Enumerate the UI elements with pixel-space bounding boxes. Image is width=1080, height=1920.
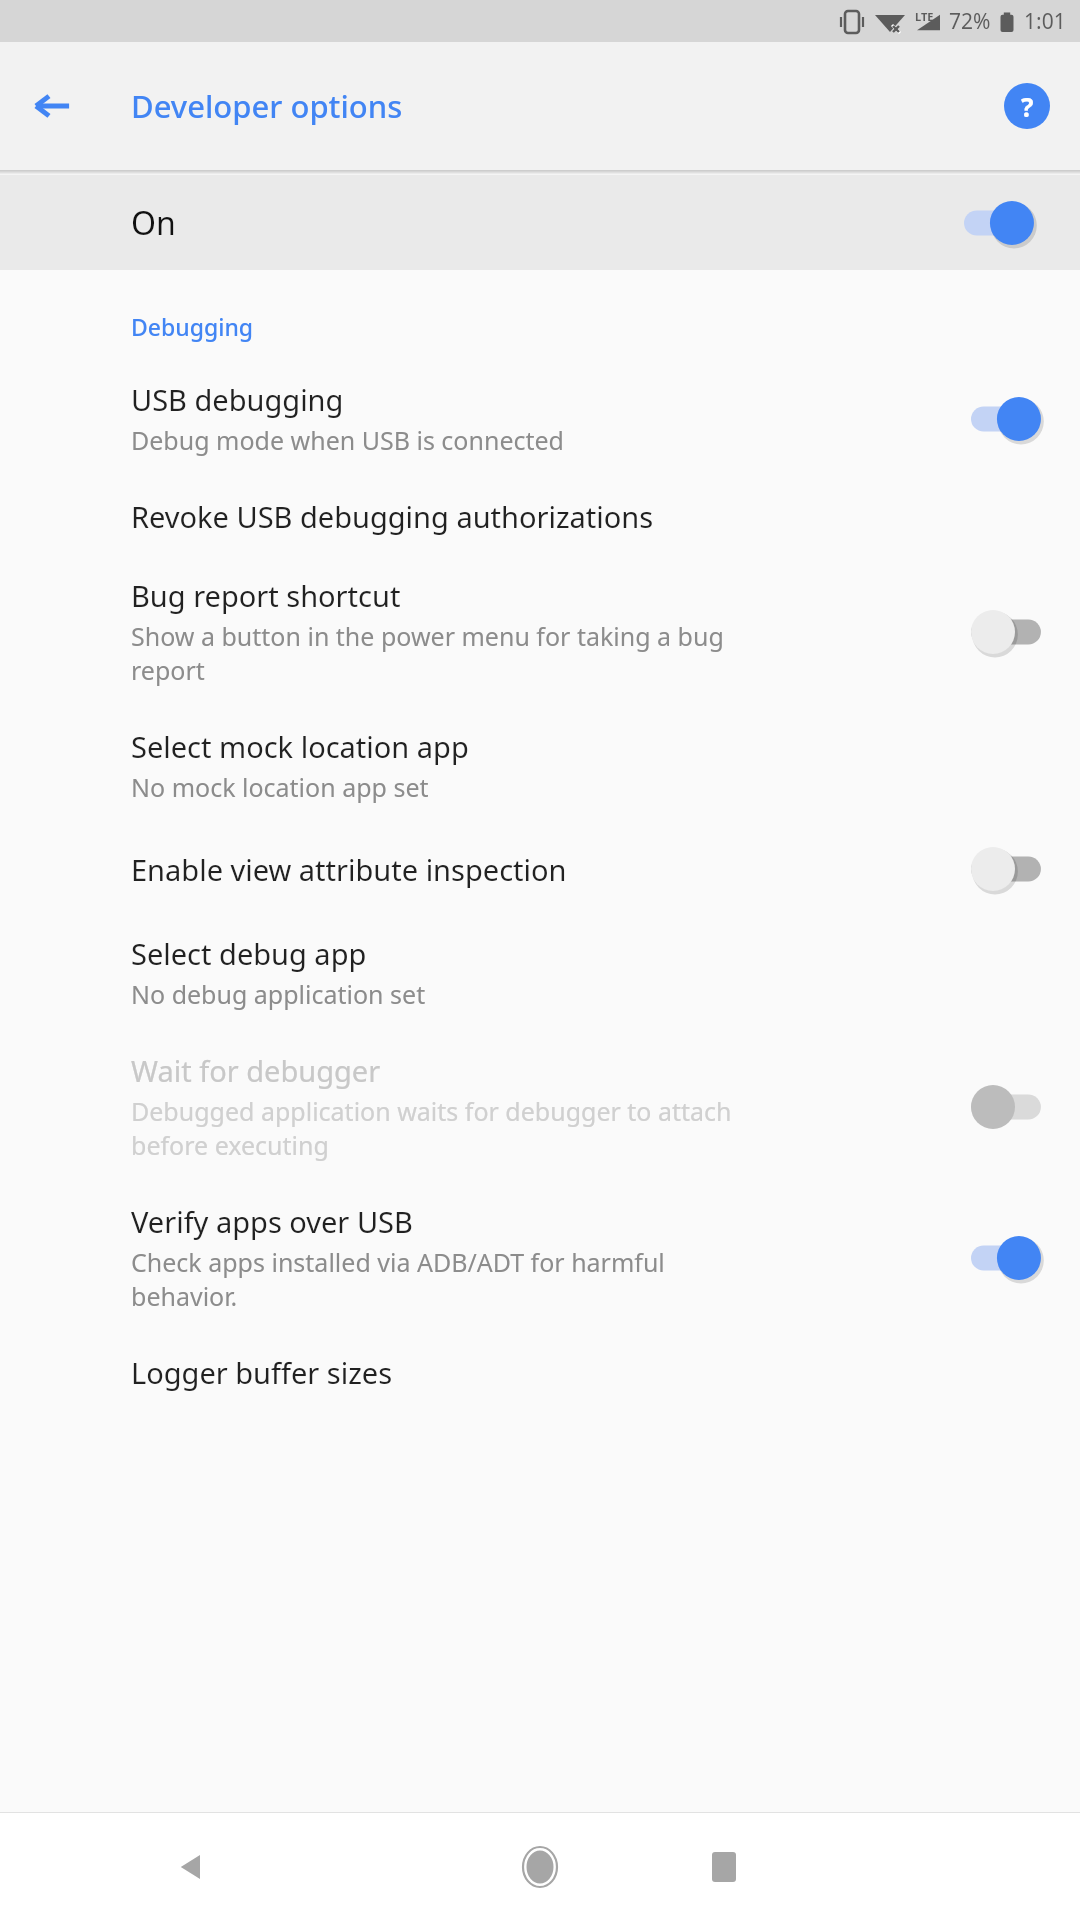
button[interactable]: Logger buffer sizes [0,1333,1080,1412]
staticText: Wait for debugger [131,1051,381,1090]
button[interactable]: Back [20,74,84,138]
staticText: Debug mode when USB is connected [131,423,564,457]
button[interactable]: Home [504,1831,576,1903]
staticText: Check apps installed via ADB/ADT for har… [131,1245,665,1313]
button[interactable]: Select mock location app [0,707,1080,824]
button[interactable]: On [0,175,1080,270]
staticText: Show a button in the power menu for taki… [131,619,724,687]
staticText: Revoke USB debugging authorizations [131,497,654,536]
staticText: No debug application set [131,977,426,1011]
staticText: No mock location app set [131,770,429,804]
staticText: On [131,201,176,245]
staticText: LTE [915,9,934,24]
button[interactable]: Bug report shortcut [0,556,1080,707]
staticText: ? [1021,89,1034,124]
staticText: Bug report shortcut [131,576,401,615]
staticText: Developer options [131,85,403,127]
staticText: Select debug app [131,934,367,973]
button[interactable]: Revoke USB debugging authorizations [0,477,1080,556]
button[interactable]: Wait for debugger [0,1031,1080,1182]
staticText: 1:01 [1024,7,1066,36]
staticText: USB debugging [131,380,344,419]
button[interactable]: Select debug app [0,914,1080,1031]
button[interactable]: Help [996,75,1058,137]
button[interactable]: Verify apps over USB [0,1182,1080,1333]
button[interactable]: USB debugging [0,360,1080,477]
button[interactable]: Recents [688,1831,760,1903]
button[interactable]: Back [155,1831,227,1903]
button[interactable]: Enable view attribute inspection [0,824,1080,914]
staticText: Verify apps over USB [131,1202,413,1241]
staticText: Select mock location app [131,727,469,766]
staticText: Debugged application waits for debugger … [131,1094,732,1162]
staticText: Logger buffer sizes [131,1353,393,1392]
staticText: Debugging [131,311,254,342]
staticText: Enable view attribute inspection [131,850,567,889]
staticText: 72% [949,7,991,36]
